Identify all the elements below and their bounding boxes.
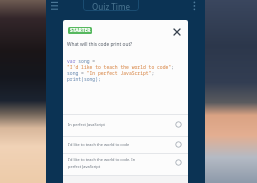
button[interactable]: Open navigation menu bbox=[46, 0, 63, 12]
button[interactable]: Close bbox=[170, 25, 183, 38]
staticText: What will this code print out? bbox=[67, 41, 133, 48]
staticText: song = "In perfect JavaScript"; bbox=[67, 70, 155, 76]
button[interactable] bbox=[63, 136, 188, 154]
staticText: STARTER bbox=[70, 27, 91, 34]
staticText: var song = bbox=[67, 58, 96, 64]
staticText: In perfect JavaScript bbox=[68, 122, 149, 127]
button[interactable] bbox=[63, 114, 188, 136]
staticText: print(song); bbox=[67, 76, 101, 82]
button[interactable]: Quiz Time bbox=[83, 0, 139, 11]
button[interactable]: STARTER bbox=[68, 27, 92, 34]
staticText: "I'd like to teach the world to code"; bbox=[67, 64, 174, 70]
button[interactable]: More options bbox=[189, 0, 200, 12]
staticText: I'd like to teach the world to code bbox=[68, 142, 149, 147]
button[interactable] bbox=[63, 153, 188, 175]
staticText: Quiz Time bbox=[92, 1, 131, 11]
staticText: I'd like to teach the world to code. In … bbox=[68, 157, 149, 169]
